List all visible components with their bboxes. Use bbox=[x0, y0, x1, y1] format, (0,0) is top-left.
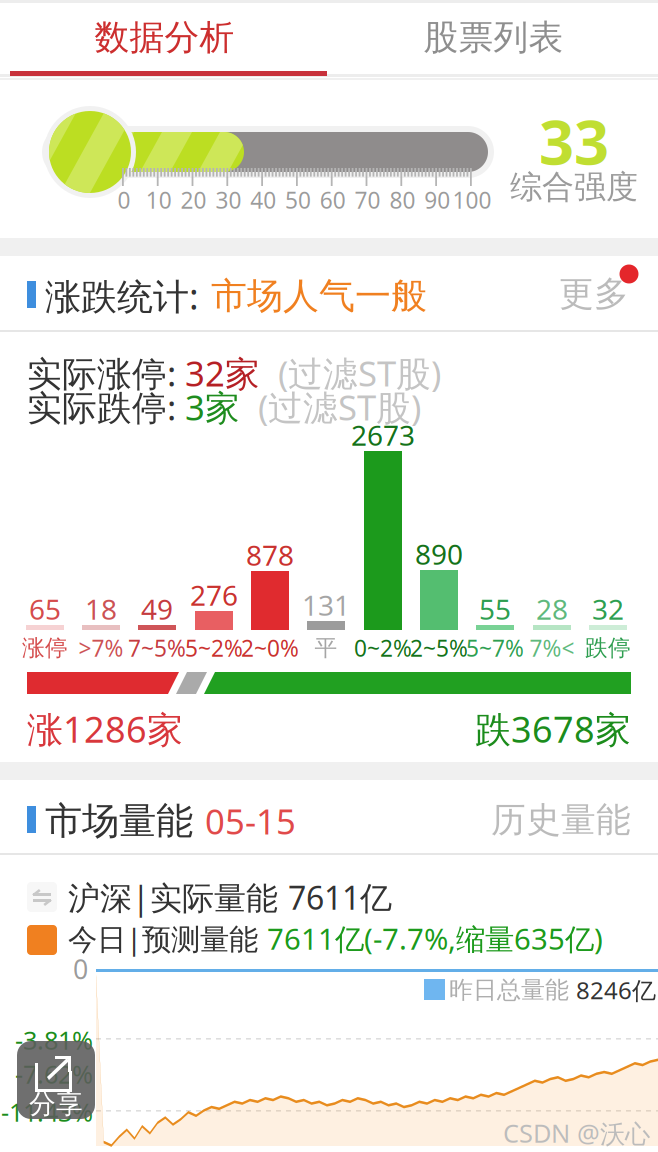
button[interactable]: 股票列表 bbox=[329, 0, 658, 75]
staticText: 50 bbox=[285, 185, 311, 215]
staticText: 18 bbox=[85, 590, 117, 628]
button[interactable]: 更多 bbox=[519, 266, 629, 322]
staticText: -3.81% bbox=[15, 1023, 93, 1057]
staticText: 49 bbox=[141, 590, 173, 628]
staticText: 实际跌停: bbox=[27, 384, 185, 430]
staticText: 分享 bbox=[29, 1088, 83, 1120]
staticText: 276 bbox=[190, 576, 238, 614]
staticText: 2~5% bbox=[410, 633, 468, 663]
staticText: -11.43% bbox=[1, 1095, 93, 1129]
staticText: 878 bbox=[246, 536, 294, 574]
button[interactable]: 数据分析 bbox=[0, 0, 329, 75]
staticText: 33 bbox=[539, 100, 609, 182]
staticText: 0~2% bbox=[354, 633, 412, 663]
button[interactable]: 历史量能 bbox=[471, 792, 631, 848]
staticText: 55 bbox=[479, 590, 511, 628]
staticText: 100 bbox=[452, 185, 491, 215]
staticText: 32家 bbox=[185, 350, 260, 396]
staticText: (过滤ST股) bbox=[240, 384, 421, 430]
staticText: 涨跌统计: bbox=[45, 272, 199, 320]
staticText: 数据分析 bbox=[94, 16, 234, 59]
staticText: 今日|预测量能 bbox=[68, 919, 267, 958]
staticText: 沪深|实际量能 bbox=[68, 876, 288, 918]
staticText: 70 bbox=[355, 185, 381, 215]
staticText: 30 bbox=[215, 185, 241, 215]
staticText: 平 bbox=[314, 634, 337, 662]
staticText: 历史量能 bbox=[491, 799, 631, 841]
staticText: 40 bbox=[250, 185, 276, 215]
staticText: 60 bbox=[320, 185, 346, 215]
staticText: 0 bbox=[73, 951, 88, 987]
staticText: 跌3678家 bbox=[475, 705, 631, 753]
staticText: 7611亿 bbox=[288, 876, 392, 918]
staticText: 8246亿 bbox=[576, 974, 656, 1006]
staticText: 7%< bbox=[529, 633, 574, 663]
staticText: 更多 bbox=[559, 273, 629, 315]
staticText: 5~7% bbox=[466, 633, 524, 663]
staticText: 0 bbox=[117, 185, 130, 215]
staticText: 90 bbox=[424, 185, 450, 215]
staticText: 65 bbox=[29, 590, 61, 628]
staticText: 市场人气一般 bbox=[211, 274, 427, 318]
staticText: 32 bbox=[592, 590, 624, 628]
staticText: CSDN @沃心 bbox=[503, 1116, 650, 1150]
staticText: >7% bbox=[78, 633, 123, 663]
staticText: 7611亿(-7.7%,缩量635亿) bbox=[267, 919, 603, 958]
staticText: 05-15 bbox=[205, 798, 296, 844]
staticText: 5~2% bbox=[185, 633, 243, 663]
staticText: 涨停 bbox=[22, 634, 68, 662]
staticText: 3家 bbox=[185, 384, 240, 430]
staticText: 涨1286家 bbox=[27, 705, 183, 753]
staticText: 实际涨停: bbox=[27, 350, 185, 396]
staticText: 20 bbox=[181, 185, 207, 215]
staticText: 28 bbox=[536, 590, 568, 628]
staticText: 昨日总量能 bbox=[449, 975, 576, 1005]
staticText: 市场量能 bbox=[45, 798, 193, 844]
staticText: 890 bbox=[415, 535, 463, 573]
button[interactable]: 分享 bbox=[17, 1041, 95, 1119]
staticText: 综合强度 bbox=[510, 167, 638, 207]
staticText: 2~0% bbox=[241, 633, 299, 663]
staticText: -7.62% bbox=[15, 1057, 93, 1091]
staticText: 2673 bbox=[351, 416, 415, 454]
staticText: 80 bbox=[389, 185, 415, 215]
staticText: (过滤ST股) bbox=[260, 350, 441, 396]
staticText: 跌停 bbox=[585, 634, 631, 662]
staticText: 10 bbox=[146, 185, 172, 215]
staticText: 7~5% bbox=[128, 633, 186, 663]
staticText: 131 bbox=[302, 586, 350, 624]
staticText: 股票列表 bbox=[423, 16, 563, 59]
